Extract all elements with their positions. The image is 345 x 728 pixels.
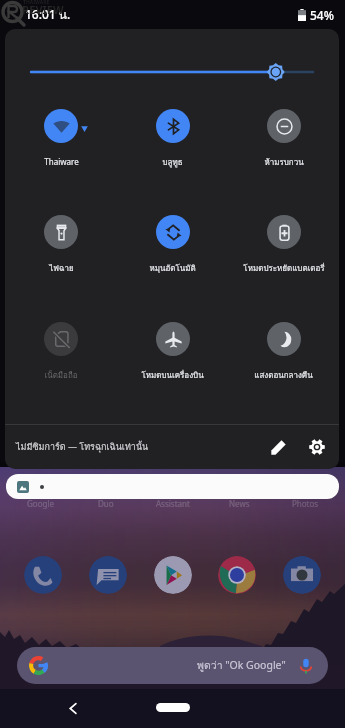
button[interactable]: เน็ตมือถือ <box>5 322 117 382</box>
button[interactable]: พูดว่า "Ok Google" <box>17 647 328 684</box>
button[interactable]: บลูทูธ <box>117 109 228 169</box>
button[interactable]: Chrome <box>218 556 256 594</box>
button[interactable]: ห้ามรบกวน <box>228 109 339 169</box>
staticText: REVIEW <box>22 2 64 17</box>
button[interactable]: Home <box>156 703 190 712</box>
staticText: THAIWARE <box>23 0 50 6</box>
button[interactable]: Settings <box>301 431 333 463</box>
button[interactable]: Phone <box>24 556 62 594</box>
button[interactable]: Thaiware <box>5 109 117 167</box>
button[interactable]: โหมดบนเครื่องบิน <box>117 322 228 382</box>
button[interactable]: Play Store <box>154 556 192 594</box>
staticText: เน็ตมือถือ <box>44 369 78 382</box>
button[interactable]: Camera <box>283 556 321 594</box>
button[interactable] <box>6 474 339 499</box>
staticText: Thaiware <box>44 156 79 167</box>
button[interactable]: Messages <box>89 556 127 594</box>
staticText: Google <box>27 498 54 509</box>
button[interactable]: แสงตอนกลางคืน <box>228 322 339 382</box>
button[interactable]: โหมดประหยัดแบตเตอรี่ <box>228 215 339 275</box>
button[interactable]: หมุนอัตโนมัติ <box>117 215 228 275</box>
staticText: Assistant <box>156 498 190 509</box>
staticText: โหมดประหยัดแบตเตอรี่ <box>243 262 325 275</box>
staticText: หมุนอัตโนมัติ <box>149 262 196 275</box>
staticText: พูดว่า "Ok Google" <box>197 657 286 674</box>
staticText: 54% <box>310 7 334 23</box>
staticText: แสงตอนกลางคืน <box>254 369 313 382</box>
staticText: Photos <box>292 498 319 509</box>
button[interactable]: Edit tiles <box>262 431 294 463</box>
staticText: ห้ามรบกวน <box>264 156 304 169</box>
staticText: News <box>229 498 250 509</box>
button[interactable]: ไฟฉาย <box>5 215 117 275</box>
staticText: ไฟฉาย <box>49 262 74 275</box>
staticText: บลูทูธ <box>162 156 183 169</box>
button[interactable]: Back <box>61 696 85 720</box>
staticText: โหมดบนเครื่องบิน <box>141 369 204 382</box>
staticText: Duo <box>98 498 114 509</box>
staticText: ไม่มีซิมการ์ด — โทรฉุกเฉินเท่านั้น <box>16 440 149 454</box>
staticText: 16:01 น. <box>25 5 71 24</box>
